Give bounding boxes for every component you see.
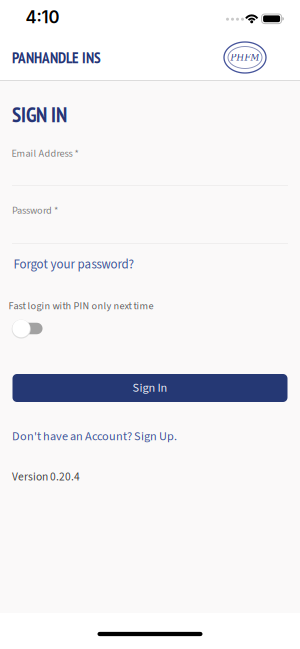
staticText: PHFM (230, 52, 259, 63)
staticText: Email Address * (11, 146, 78, 161)
staticText: Fast login with PIN only next time (8, 299, 153, 313)
staticText: Forgot your password? (13, 255, 133, 274)
button[interactable]: Email Address * (12, 140, 288, 186)
staticText: Version 0.20.4 (12, 469, 80, 485)
button[interactable]: Password * (12, 198, 288, 244)
staticText: PANHANDLE INS (12, 48, 101, 67)
button[interactable]: Fast login with PIN only next time (8, 314, 50, 343)
staticText: SIGN IN (12, 101, 67, 128)
button[interactable]: Sign In (12, 374, 287, 402)
staticText: Password * (12, 203, 58, 218)
button[interactable]: Don't have an Account? Sign Up. (12, 428, 177, 445)
staticText: Don't have an Account? Sign Up. (12, 428, 177, 445)
button[interactable]: Forgot your password? (13, 255, 133, 274)
staticText: 4:10 (25, 7, 59, 27)
staticText: Sign In (132, 379, 167, 397)
